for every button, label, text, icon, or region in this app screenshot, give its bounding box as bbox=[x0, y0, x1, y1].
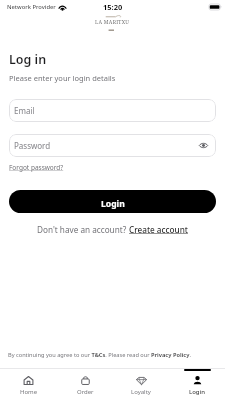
staticText: Password bbox=[14, 140, 51, 151]
button[interactable]: Login bbox=[169, 369, 225, 400]
staticText: Email bbox=[14, 105, 35, 116]
staticText: Don't have an account? bbox=[37, 224, 129, 235]
staticText: Please enter your login details bbox=[9, 73, 116, 83]
button[interactable]: Forgot password? bbox=[9, 163, 64, 172]
staticText: Log in bbox=[9, 51, 47, 68]
staticText: Login bbox=[189, 388, 205, 396]
staticText: Home bbox=[20, 388, 38, 396]
button[interactable]: Password bbox=[9, 134, 216, 157]
staticText: Order bbox=[77, 388, 94, 396]
button[interactable]: Create account bbox=[129, 224, 188, 235]
button[interactable]: Email bbox=[9, 99, 216, 122]
button[interactable]: Loyalty bbox=[113, 369, 169, 400]
staticText: Network Provider bbox=[7, 3, 56, 11]
staticText: By continuing you agree to our T&Cs. Ple… bbox=[8, 351, 221, 359]
staticText: Login bbox=[101, 198, 125, 210]
staticText: LA MARITXU bbox=[95, 19, 130, 26]
button[interactable]: Login bbox=[9, 190, 216, 213]
staticText: 15:20 bbox=[103, 2, 123, 12]
button[interactable]: Home bbox=[0, 369, 57, 400]
button[interactable]: Order bbox=[57, 369, 113, 400]
button[interactable]: Show password bbox=[198, 140, 209, 151]
staticText: Loyalty bbox=[131, 388, 151, 396]
